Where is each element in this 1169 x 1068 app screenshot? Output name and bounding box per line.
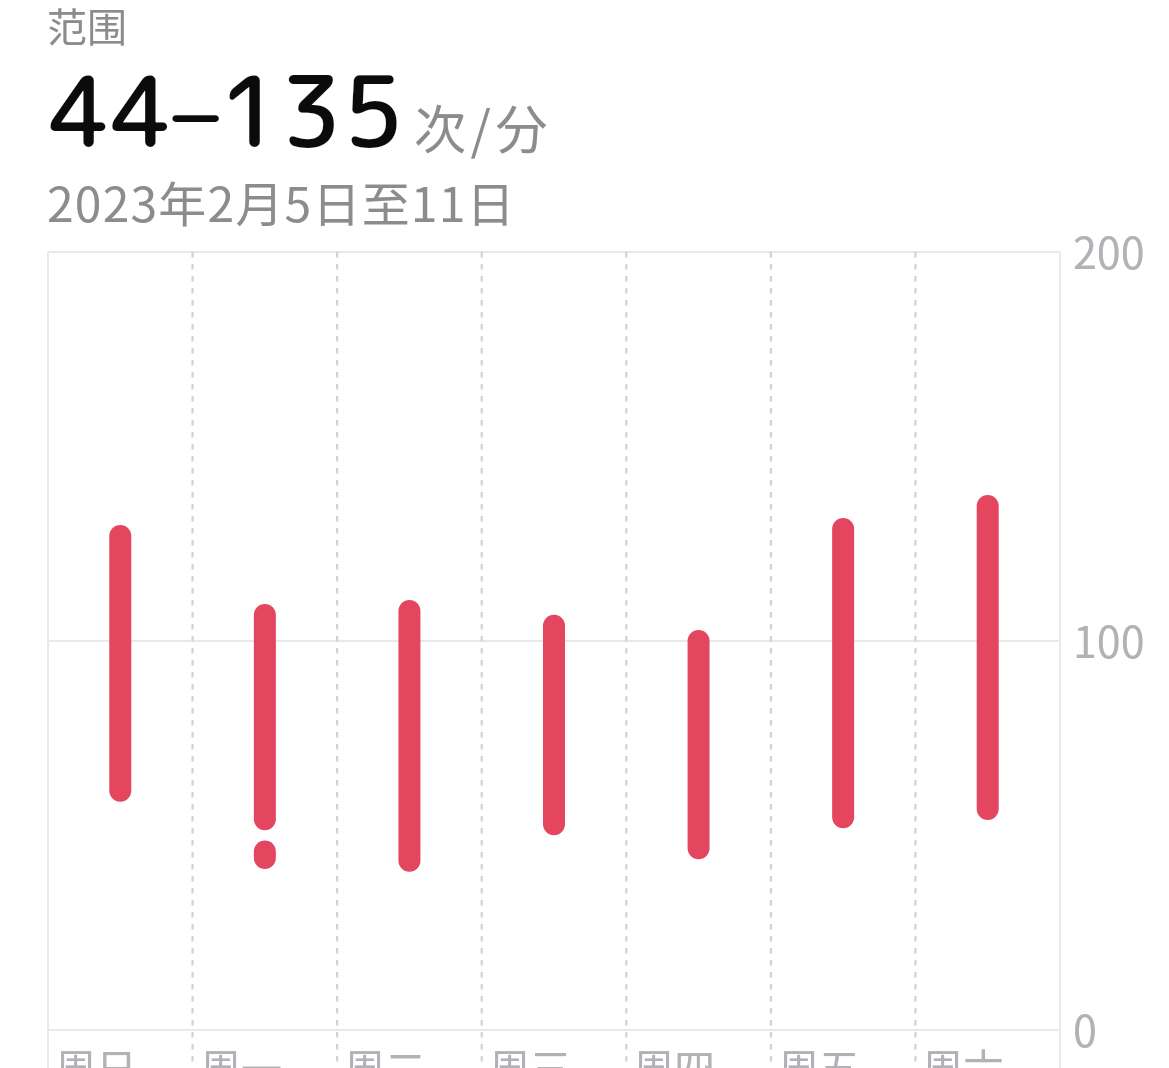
staticText: 范围	[47, 0, 127, 54]
button[interactable]: 周六 56–134 次/分	[915, 252, 1060, 1030]
staticText: 2023年2月5日至11日	[47, 166, 516, 236]
staticText: 0	[1073, 997, 1097, 1059]
staticText: 次/分	[414, 89, 552, 164]
button[interactable]: 周五 54–128 次/分	[771, 252, 916, 1030]
staticText: 周四	[633, 1036, 715, 1068]
button[interactable]: 周日 61–127 次/分	[48, 252, 193, 1030]
staticText: 周二	[344, 1036, 426, 1068]
button[interactable]: 周四 46–100 次/分	[626, 252, 771, 1030]
staticText: 周五	[778, 1036, 860, 1068]
staticText: 周三	[489, 1036, 571, 1068]
staticText: 100	[1073, 608, 1145, 670]
button[interactable]: 周一 54–106 次/分	[193, 252, 338, 1030]
staticText: 周日	[55, 1036, 137, 1068]
staticText: 周一	[200, 1036, 282, 1068]
staticText: 200	[1073, 219, 1145, 281]
staticText: 44–135	[49, 42, 404, 179]
button[interactable]: 周三 52–103 次/分	[482, 252, 627, 1030]
staticText: 周六	[922, 1036, 1004, 1068]
button[interactable]: 周二 43–107 次/分	[337, 252, 482, 1030]
